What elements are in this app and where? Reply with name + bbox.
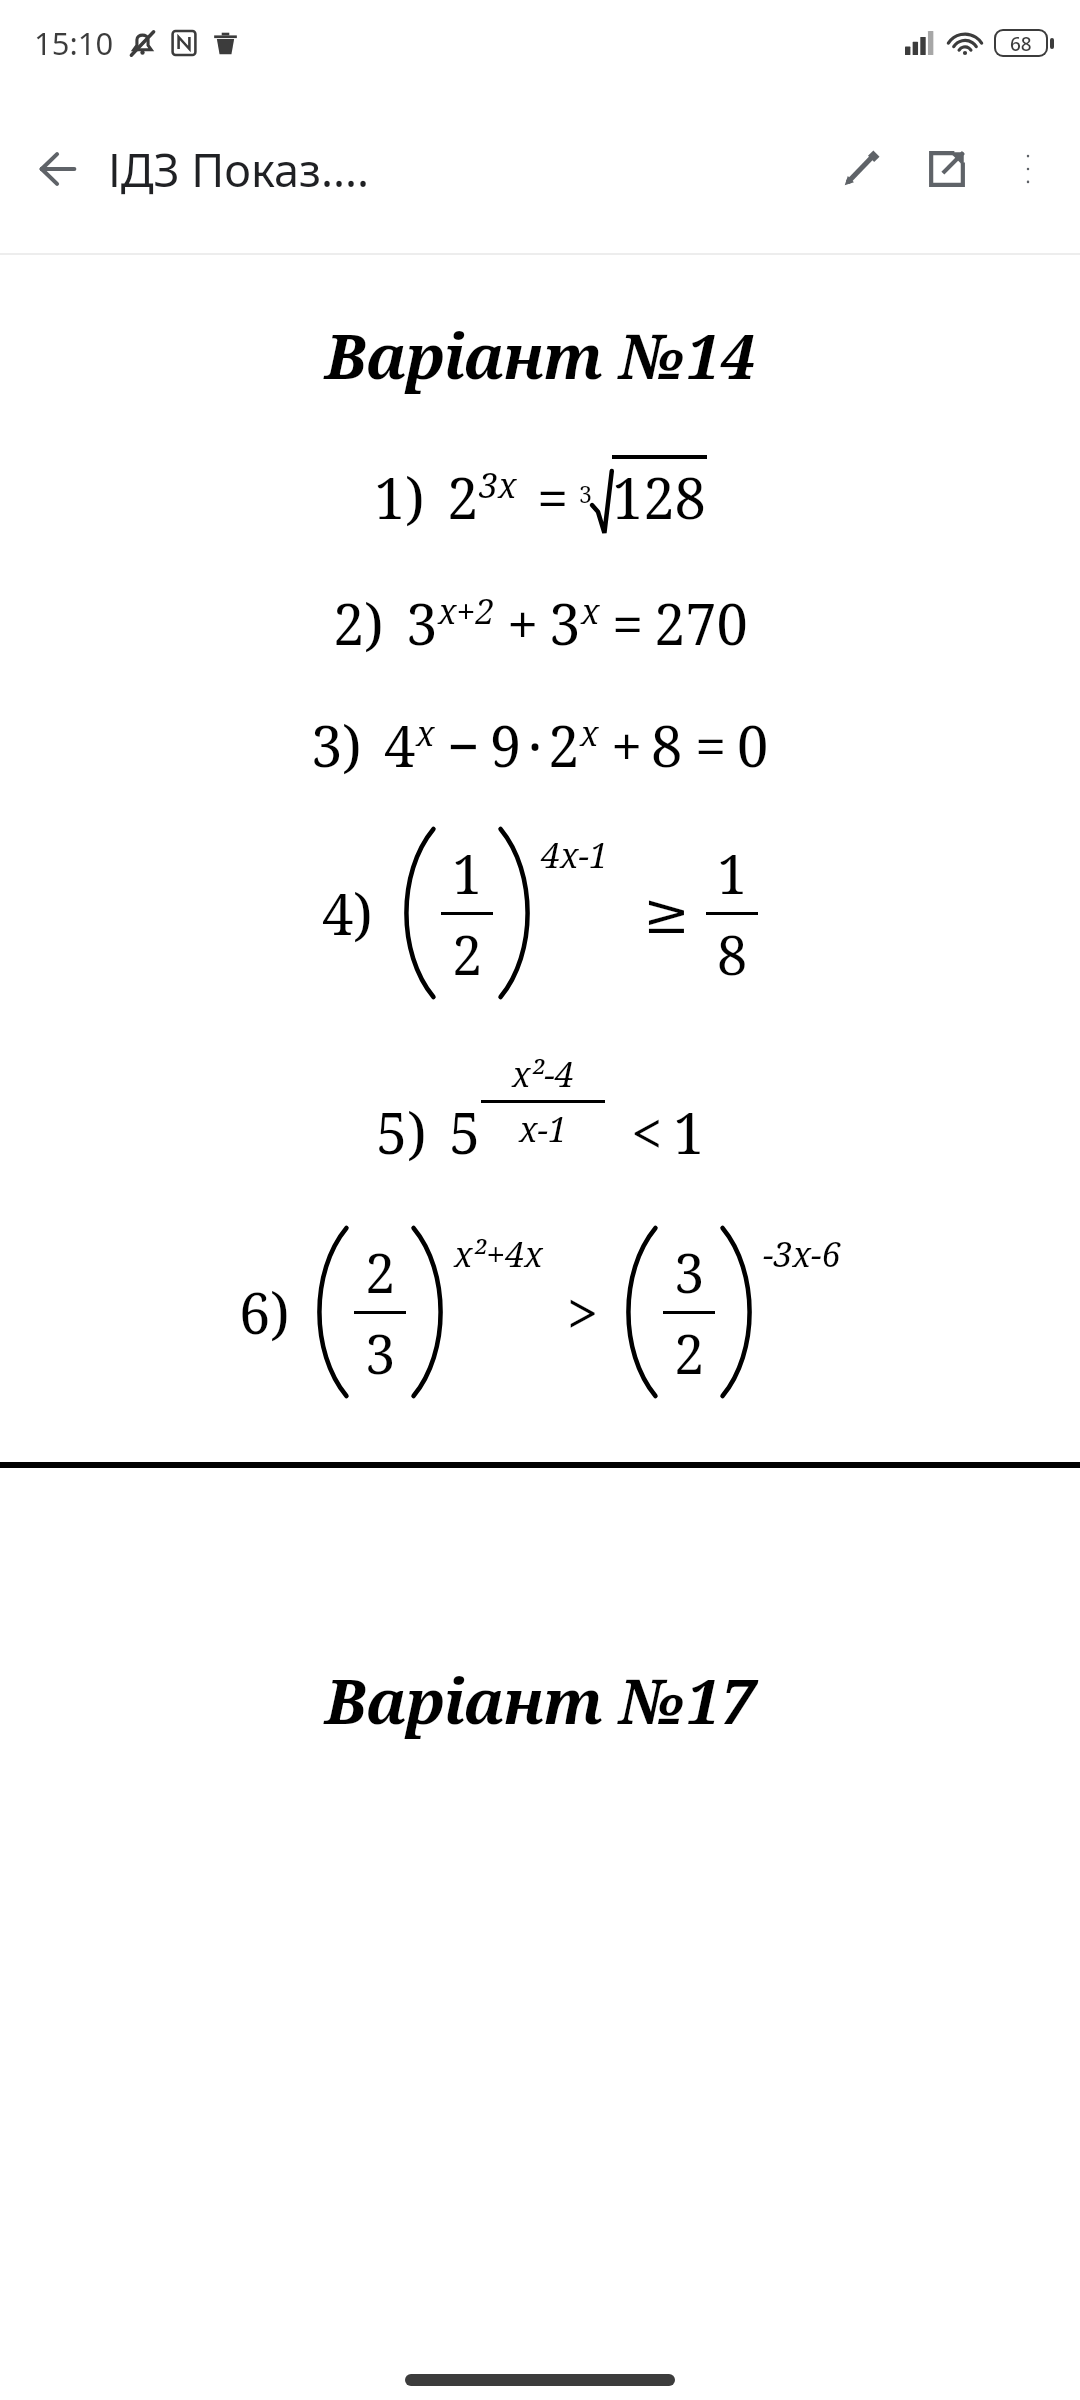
button[interactable]: Open in new window: [904, 126, 990, 212]
staticText: 128: [612, 459, 706, 535]
button[interactable]: Edit: [818, 126, 904, 212]
staticText: −: [447, 707, 480, 783]
staticText: 3: [549, 585, 581, 661]
staticText: +: [507, 585, 539, 661]
staticText: =: [537, 459, 569, 535]
button[interactable]: Back: [18, 129, 98, 209]
staticText: 15:10: [34, 22, 114, 64]
staticText: 68: [1010, 31, 1032, 55]
staticText: x: [581, 588, 600, 634]
staticText: 2): [333, 585, 384, 661]
staticText: 3: [674, 1235, 705, 1309]
staticText: 9: [490, 707, 522, 783]
staticText: 3: [406, 585, 438, 661]
staticText: 3: [579, 478, 592, 509]
staticText: x²+4x: [454, 1231, 543, 1277]
staticText: 2: [548, 707, 580, 783]
staticText: 3x: [479, 462, 517, 508]
staticText: 4: [384, 707, 416, 783]
staticText: 2: [452, 917, 483, 991]
staticText: =: [612, 585, 644, 661]
staticText: =: [695, 707, 727, 783]
staticText: 1: [452, 836, 483, 910]
staticText: 1): [374, 459, 425, 535]
staticText: >: [567, 1274, 599, 1350]
staticText: 8: [651, 707, 683, 783]
staticText: 4x−1: [541, 832, 609, 878]
staticText: 2: [447, 459, 479, 535]
staticText: 4): [322, 875, 373, 951]
staticText: Варіант №14: [325, 313, 755, 397]
staticText: 1: [717, 836, 748, 910]
staticText: 3): [311, 707, 362, 783]
staticText: ІДЗ Показ....: [108, 139, 818, 200]
staticText: x+2: [438, 588, 495, 634]
staticText: 5: [449, 1094, 481, 1170]
staticText: ·: [528, 707, 542, 783]
staticText: x: [580, 710, 599, 756]
staticText: +: [611, 707, 643, 783]
staticText: <: [631, 1094, 663, 1170]
staticText: x: [416, 710, 435, 756]
staticText: 0: [737, 707, 769, 783]
staticText: 2: [365, 1235, 396, 1309]
button[interactable]: More options: [990, 131, 1066, 207]
staticText: ≥: [643, 881, 690, 946]
staticText: 1: [673, 1094, 705, 1170]
staticText: 2: [674, 1316, 705, 1390]
staticText: x−1: [519, 1106, 568, 1152]
staticText: 8: [717, 917, 748, 991]
staticText: 3: [365, 1316, 396, 1390]
staticText: −3x−6: [763, 1231, 841, 1277]
staticText: Варіант №17: [325, 1658, 755, 1742]
staticText: 5): [376, 1094, 427, 1170]
staticText: 270: [654, 585, 748, 661]
staticText: x²−4: [512, 1051, 574, 1097]
staticText: 6): [239, 1274, 290, 1350]
